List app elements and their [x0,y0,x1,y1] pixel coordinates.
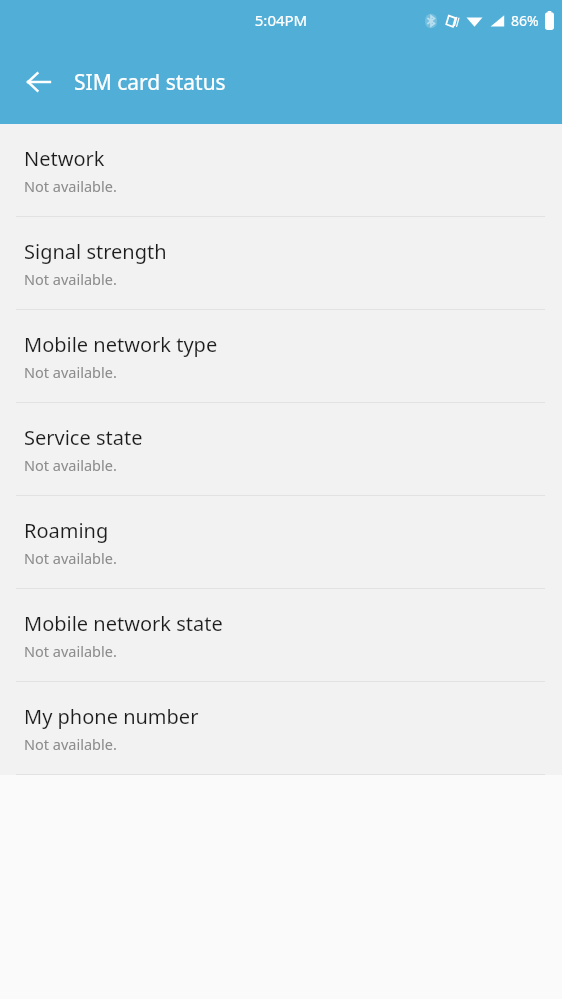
staticText: Not available. [24,176,117,196]
staticText: Roaming [24,517,109,544]
staticText: Mobile network state [24,610,223,637]
button[interactable]: My phone number [0,682,562,774]
staticText: Not available. [24,455,117,475]
button[interactable]: Navigate up [15,58,63,106]
staticText: Not available. [24,734,117,754]
staticText: Mobile network type [24,331,218,358]
staticText: 86% [511,11,539,30]
staticText: 5:04PM [221,10,341,30]
button[interactable]: Signal strength [0,217,562,309]
button[interactable]: Mobile network state [0,589,562,681]
staticText: Service state [24,424,143,451]
staticText: Signal strength [24,238,167,265]
staticText: SIM card status [74,68,226,97]
staticText: My phone number [24,703,199,730]
staticText: Not available. [24,641,117,661]
button[interactable]: Roaming [0,496,562,588]
button[interactable]: Network [0,124,562,216]
staticText: Not available. [24,269,117,289]
staticText: Not available. [24,362,117,382]
staticText: Not available. [24,548,117,568]
staticText: Network [24,145,105,172]
button[interactable]: Mobile network type [0,310,562,402]
button[interactable]: Service state [0,403,562,495]
